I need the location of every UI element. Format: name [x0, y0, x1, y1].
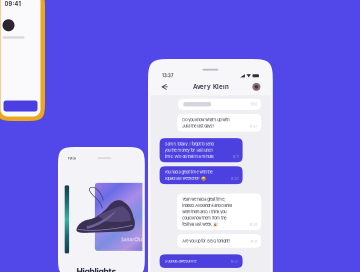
staticText: 14:20 — [231, 177, 239, 181]
button[interactable]: You had a great time with the — [160, 166, 243, 184]
staticText: 19:37 — [231, 260, 239, 264]
staticText: Do you know what's up with — [182, 117, 229, 122]
staticText: 19:37 — [67, 156, 76, 160]
staticText: 19:13 — [250, 239, 257, 243]
button[interactable]: Profile — [252, 83, 260, 91]
button[interactable]: Back — [160, 82, 169, 91]
button[interactable]: Do you know what's up with — [177, 114, 261, 132]
staticText: Sounds awesome! — [165, 259, 197, 263]
staticText: time. Will do that in a minute — [165, 154, 214, 159]
staticText: 14:11 — [233, 155, 239, 159]
staticText: 13:37 — [249, 124, 257, 128]
staticText: LunarCharge — [121, 237, 151, 242]
staticText: You had a great time with the — [165, 170, 213, 174]
staticText: Julia the last days? — [182, 123, 214, 128]
staticText: Yeah we had a great time, — [182, 197, 225, 202]
staticText: Damn, totally, I forgot to send — [165, 141, 214, 146]
staticText: could know them from the — [182, 216, 226, 220]
staticText: 11:50 — [250, 102, 257, 106]
staticText: 09:41 — [4, 0, 20, 7]
staticText: 13:37 — [162, 73, 173, 78]
button[interactable]: Sounds awesome! — [160, 254, 243, 268]
staticText: Highlights — [76, 266, 116, 272]
staticText: were there also. I think you — [182, 209, 226, 214]
staticText: festival last week. 🎉 — [182, 222, 218, 227]
staticText: Avery Klein — [193, 83, 229, 91]
staticText: 14:58 — [249, 223, 257, 227]
button[interactable]: Damn, totally, I forgot to send — [160, 138, 243, 162]
staticText: Are you up for BBQ tonight? — [182, 238, 230, 243]
button[interactable]: Are you up for BBQ tonight? — [177, 234, 261, 248]
button[interactable]: Yeah we had a great time, — [177, 194, 261, 230]
staticText: you the money for last lunch — [165, 148, 213, 153]
staticText: squad last weekend? 😄 — [165, 176, 206, 181]
staticText: indeed. Alexandra and Daniel — [182, 203, 232, 208]
